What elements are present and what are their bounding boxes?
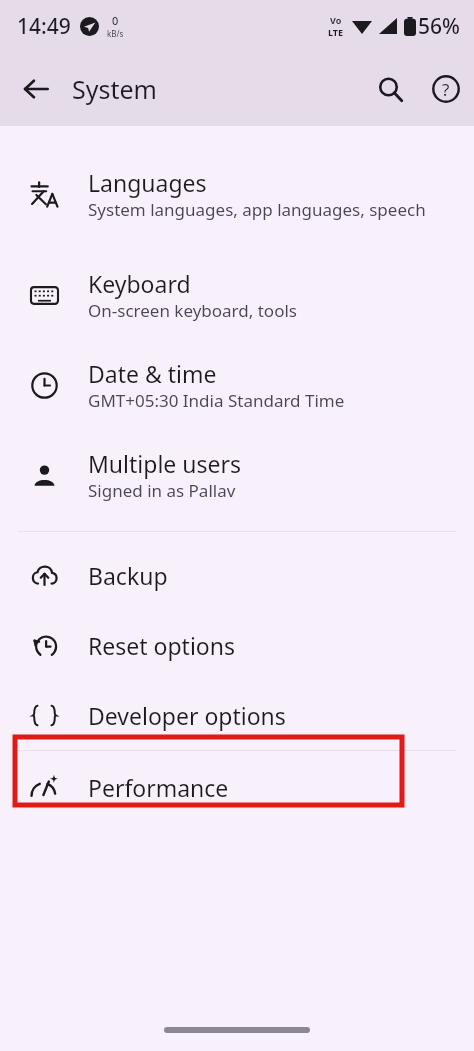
button[interactable]: Help	[418, 61, 474, 117]
staticText: 14:49	[17, 12, 71, 41]
staticText: Keyboard	[88, 268, 191, 299]
button[interactable]: Backup	[0, 540, 474, 610]
staticText: System	[72, 72, 157, 106]
staticText: Vo	[330, 14, 342, 26]
staticText: Signed in as Pallav	[88, 479, 236, 502]
staticText: Multiple users	[88, 448, 241, 479]
staticText: 56%	[418, 12, 460, 41]
button[interactable]: Languages	[0, 138, 474, 250]
button[interactable]: Search	[362, 61, 418, 117]
button[interactable]: Multiple users	[0, 430, 474, 520]
staticText: Performance	[88, 772, 229, 803]
staticText: GMT+05:30 India Standard Time	[88, 389, 345, 412]
staticText: ?	[442, 78, 450, 101]
button[interactable]: Performance	[0, 751, 474, 823]
button[interactable]: Reset options	[0, 610, 474, 680]
button[interactable]: Keyboard	[0, 250, 474, 340]
staticText: Languages	[88, 167, 207, 198]
staticText: kB/s	[107, 28, 124, 39]
button[interactable]: Date & time	[0, 340, 474, 430]
staticText: 0	[112, 13, 119, 28]
staticText: LTE	[328, 26, 344, 38]
staticText: On-screen keyboard, tools	[88, 299, 297, 322]
staticText: Reset options	[88, 630, 235, 661]
staticText: Backup	[88, 560, 168, 591]
staticText: Date & time	[88, 358, 217, 389]
staticText: Developer options	[88, 700, 286, 731]
button[interactable]: Developer options	[0, 680, 474, 750]
button[interactable]: Back	[0, 52, 72, 126]
staticText: System languages, app languages, speech	[88, 198, 426, 221]
